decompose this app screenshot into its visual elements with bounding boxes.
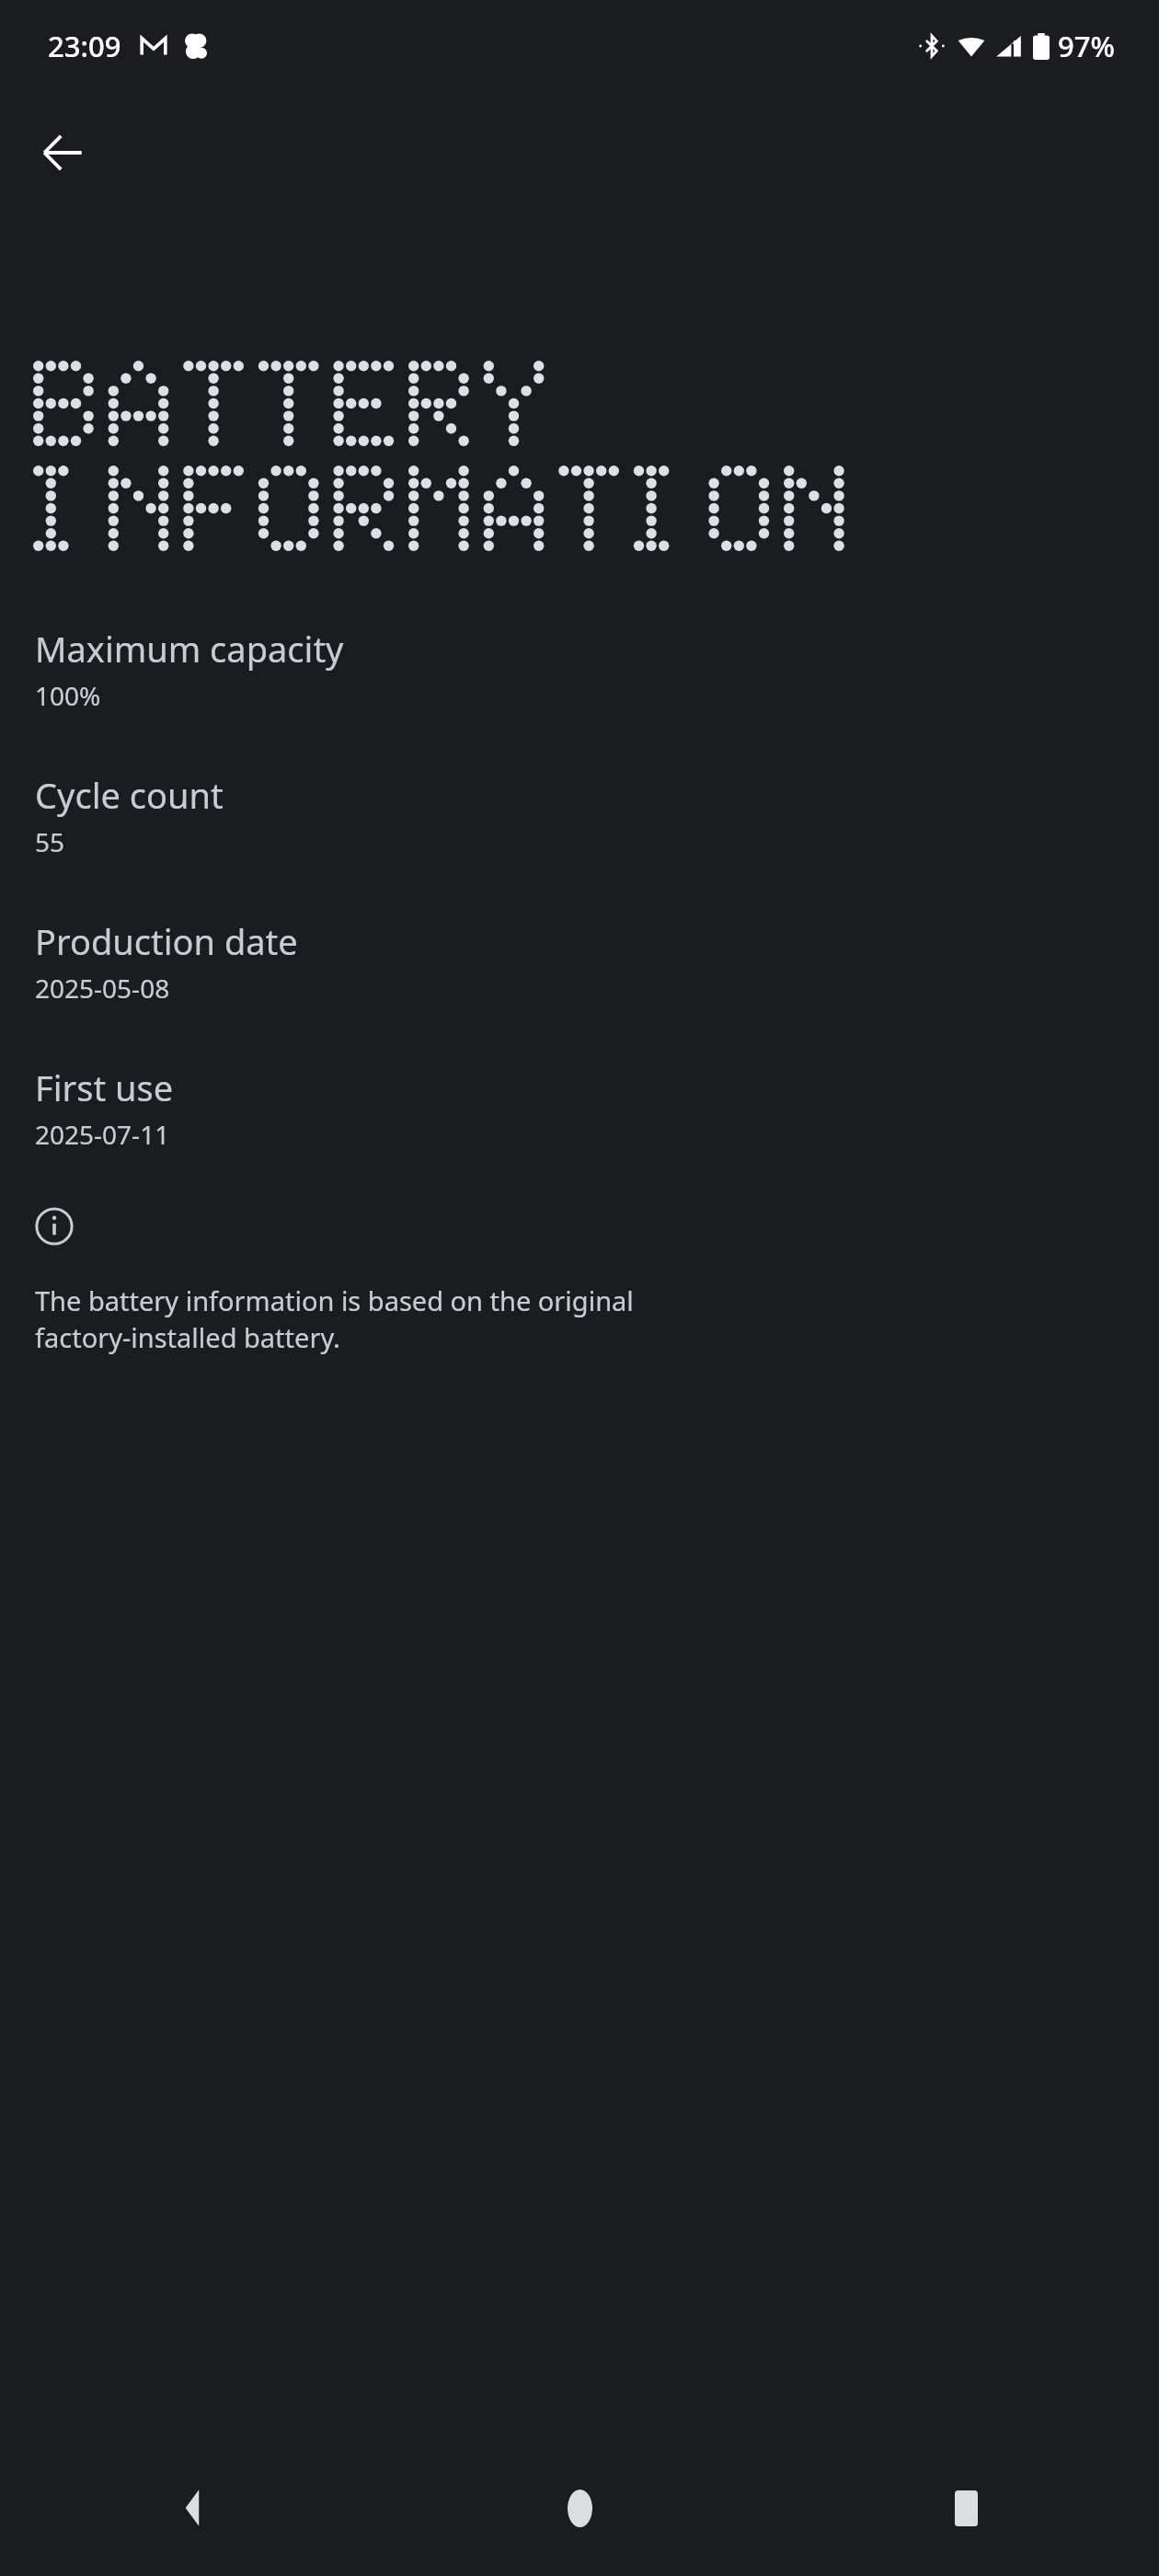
staticText: 2025-07-11: [35, 1117, 170, 1152]
staticText: 2025-05-08: [35, 971, 170, 1006]
staticText: First use: [35, 1064, 174, 1111]
staticText: 55: [35, 824, 65, 859]
button[interactable]: Back: [0, 2440, 386, 2576]
staticText: Maximum capacity: [35, 625, 344, 673]
button[interactable]: Recent apps: [773, 2440, 1159, 2576]
staticText: Production date: [35, 917, 298, 965]
staticText: Cycle count: [35, 771, 224, 819]
staticText: 97%: [1058, 27, 1115, 65]
staticText: 100%: [35, 678, 101, 713]
button[interactable]: Home: [386, 2440, 773, 2576]
button[interactable]: Back: [18, 109, 107, 197]
staticText: 23:09: [48, 27, 121, 65]
staticText: The battery information is based on the …: [35, 1282, 634, 1356]
